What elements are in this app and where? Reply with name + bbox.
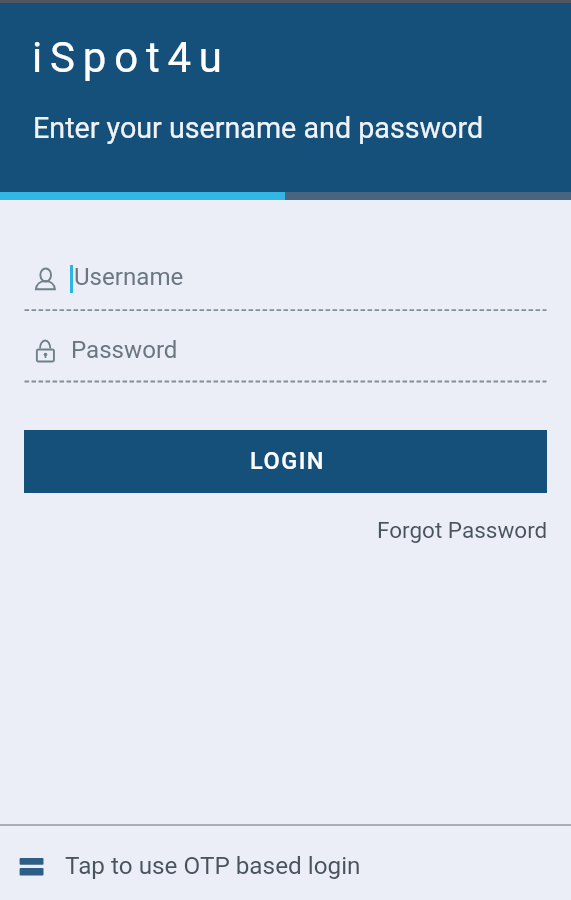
button[interactable]: Forgot Password [362,506,547,546]
other: Username [34,265,58,293]
staticText: Tap to use OTP based login [65,851,361,879]
staticText: Enter your username and password [33,111,484,145]
staticText: iSpot4u [32,33,230,82]
button[interactable]: LOGIN [24,430,547,493]
other: Password [35,338,56,364]
button[interactable]: OTP login [0,826,571,900]
button[interactable]: Password [24,324,547,384]
button[interactable]: Username [24,252,547,312]
staticText: LOGIN [250,447,326,475]
staticText: Username [74,263,184,291]
staticText: Password [71,336,178,364]
other: OTP login [19,857,45,877]
staticText: Forgot Password [377,517,548,543]
